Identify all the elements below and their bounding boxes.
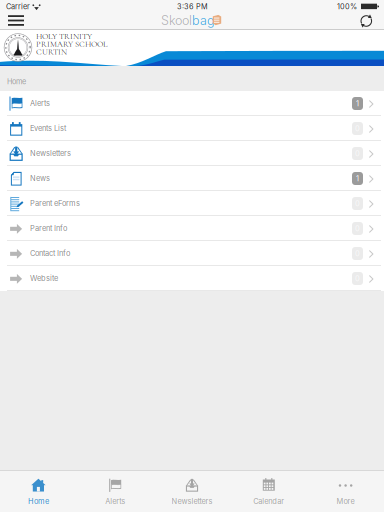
staticText: Events List	[30, 124, 66, 133]
button[interactable]: Newsletters	[154, 471, 230, 512]
button[interactable]: More	[307, 471, 384, 512]
staticText: 0	[355, 199, 360, 208]
button[interactable]: Alerts	[0, 91, 384, 116]
staticText: Parent Info	[30, 224, 67, 233]
button[interactable]: Parent eForms	[0, 191, 384, 216]
button[interactable]: Menu	[3, 13, 33, 28]
staticText: CURTIN	[36, 47, 67, 57]
button[interactable]: Contact Info	[0, 241, 384, 266]
staticText: 0	[355, 274, 360, 283]
staticText: Calendar	[253, 497, 284, 506]
button[interactable]: Newsletters	[0, 141, 384, 166]
staticText: Skool	[161, 13, 192, 28]
button[interactable]: Alerts	[77, 471, 154, 512]
staticText: Home	[7, 77, 26, 86]
button[interactable]: Home	[0, 471, 77, 512]
staticText: Home	[28, 497, 49, 506]
button[interactable]: News	[0, 166, 384, 191]
button[interactable]: Events List	[0, 116, 384, 141]
staticText: PRIMARY SCHOOL	[36, 39, 107, 49]
staticText: Contact Info	[30, 249, 70, 258]
staticText: Website	[30, 274, 58, 283]
staticText: 3:36 PM	[177, 2, 208, 11]
staticText: bag	[192, 13, 215, 28]
staticText: 0	[355, 124, 360, 133]
staticText: 100%	[337, 2, 357, 11]
staticText: 0	[355, 224, 360, 233]
staticText: More	[337, 497, 355, 506]
button[interactable]: Calendar	[230, 471, 307, 512]
staticText: Parent eForms	[30, 199, 80, 208]
staticText: Newsletters	[171, 497, 212, 506]
staticText: Alerts	[105, 497, 125, 506]
staticText: Newsletters	[30, 149, 71, 158]
staticText: Carrier	[6, 2, 30, 11]
button[interactable]: Website	[0, 266, 384, 291]
button[interactable]: Parent Info	[0, 216, 384, 241]
staticText: 1	[356, 99, 359, 108]
staticText: 0	[355, 149, 360, 158]
staticText: Alerts	[30, 99, 50, 108]
button[interactable]: Refresh	[352, 12, 382, 29]
staticText: 0	[355, 249, 360, 258]
staticText: HOLY TRINITY	[36, 31, 92, 41]
staticText: News	[30, 174, 50, 183]
staticText: 1	[356, 174, 359, 183]
